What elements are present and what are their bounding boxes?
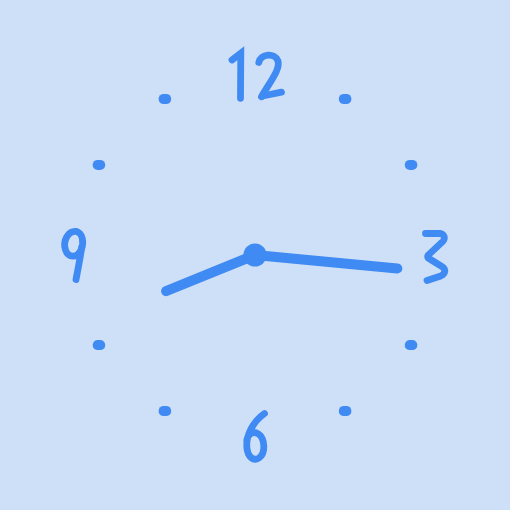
button[interactable]: Analog watch face showing 8:16 [0,0,510,510]
